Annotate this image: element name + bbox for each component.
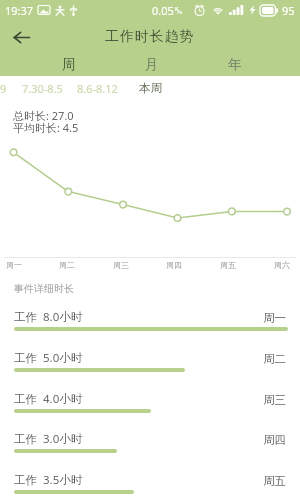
button[interactable]: 8.6-8.12 — [77, 81, 118, 96]
staticText: 总时长: 27.0 平均时长: 4.5 — [13, 108, 79, 135]
button[interactable]: 工作 5.0小时 — [0, 345, 300, 379]
button[interactable]: 7.30-8.5 — [22, 81, 63, 96]
button[interactable]: 工作 3.0小时 — [0, 426, 300, 460]
button[interactable]: Back — [6, 22, 36, 52]
staticText: 工作 5.0小时 — [14, 350, 83, 366]
staticText: 工作时长趋势 — [105, 28, 195, 46]
button[interactable]: 工作 8.0小时 — [0, 304, 300, 338]
staticText: 本周 — [139, 81, 162, 95]
button[interactable]: 年 — [193, 53, 276, 76]
staticText: 工作 3.0小时 — [14, 431, 83, 447]
button[interactable]: 工作 4.0小时 — [0, 386, 300, 420]
staticText: 周五 — [220, 260, 236, 270]
staticText: 8.6-8.12 — [77, 81, 118, 96]
staticText: 工作 3.5小时 — [14, 472, 83, 488]
staticText: 周 — [62, 56, 76, 73]
staticText: 月 — [145, 56, 159, 73]
staticText: 周四 — [166, 260, 182, 270]
staticText: 周四 — [263, 433, 286, 447]
button[interactable]: 本周 — [139, 81, 162, 95]
staticText: 周一 — [6, 260, 22, 270]
button[interactable]: 9 — [0, 81, 7, 96]
staticText: 周五 — [263, 474, 286, 488]
staticText: 工作 8.0小时 — [14, 309, 83, 325]
staticText: 工作 4.0小时 — [14, 391, 83, 407]
staticText: 事件详细时长 — [14, 282, 74, 295]
button[interactable]: 周 — [28, 53, 110, 76]
staticText: 周二 — [263, 352, 286, 366]
staticText: 0.05 — [152, 3, 174, 18]
staticText: 7.30-8.5 — [22, 81, 63, 96]
staticText: 周六 — [274, 260, 290, 270]
staticText: /s — [177, 8, 183, 16]
button[interactable]: 工作 3.5小时 — [0, 467, 300, 500]
staticText: K — [175, 5, 179, 13]
staticText: 周三 — [113, 260, 129, 270]
staticText: 95 — [282, 3, 295, 18]
staticText: 周二 — [59, 260, 75, 270]
staticText: 19:37 — [5, 3, 34, 18]
button[interactable]: 月 — [110, 53, 193, 76]
staticText: 年 — [228, 56, 242, 73]
staticText: 9 — [0, 81, 7, 96]
staticText: 周一 — [263, 311, 286, 325]
staticText: 周三 — [263, 393, 286, 407]
